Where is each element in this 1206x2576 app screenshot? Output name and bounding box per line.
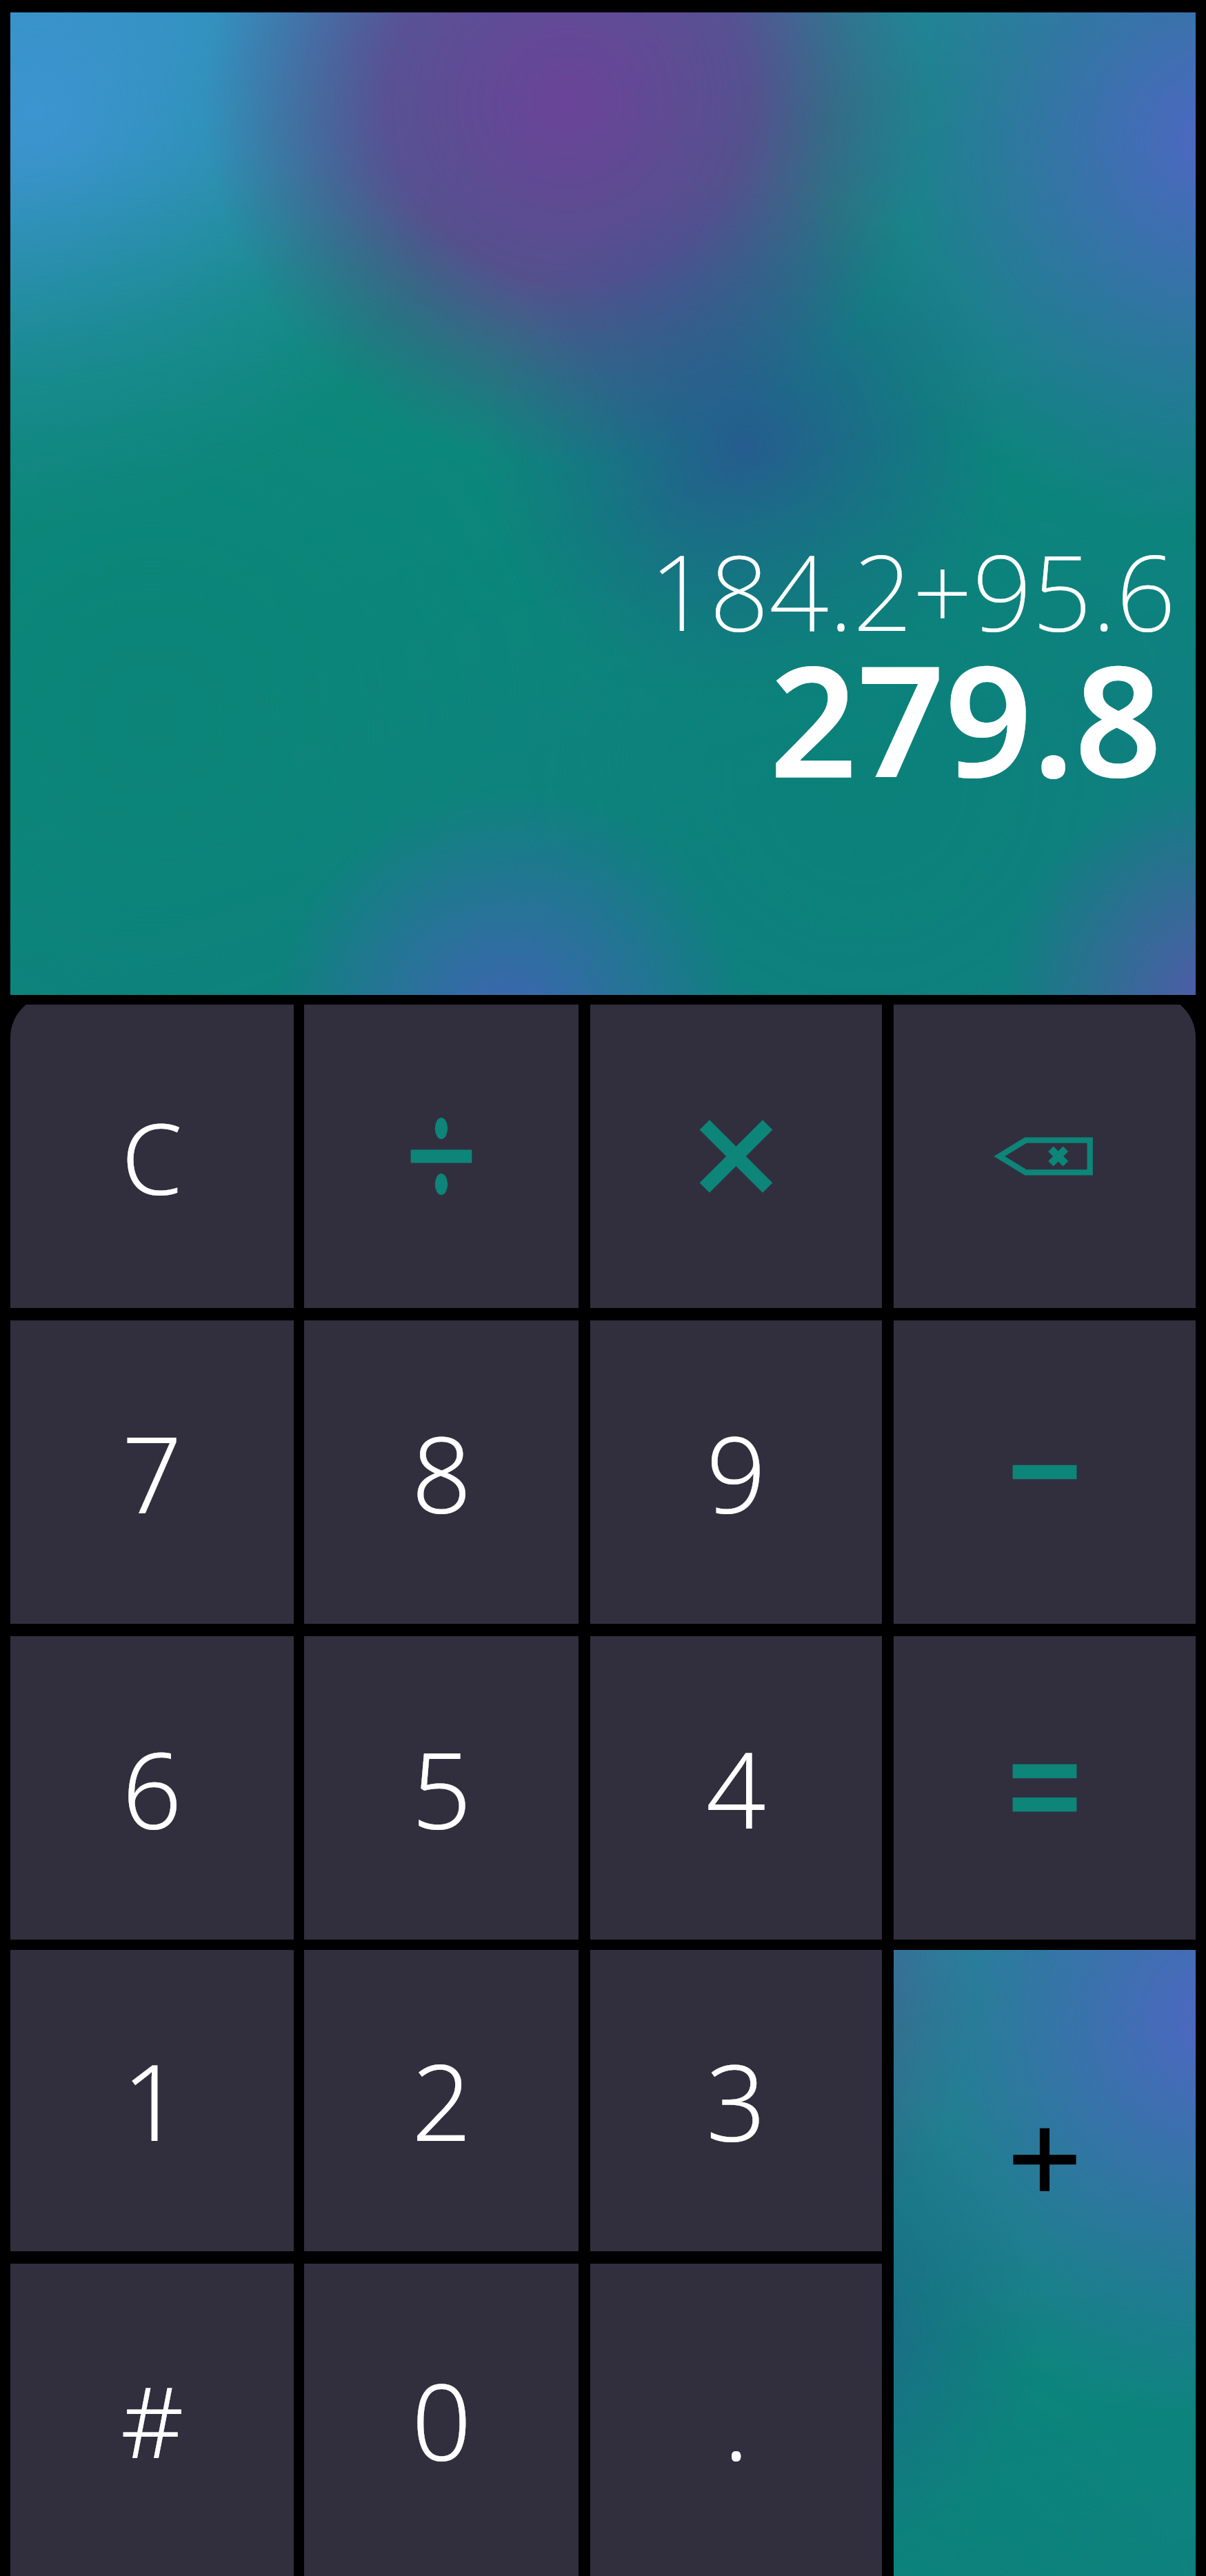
staticText: 2 (412, 2029, 472, 2172)
staticText: 5 (412, 1717, 472, 1860)
button[interactable]: 1 (10, 1950, 294, 2251)
button[interactable]: 8 (304, 1320, 579, 1624)
staticText: # (121, 2353, 184, 2486)
button[interactable]: Multiply (590, 1005, 882, 1308)
button[interactable]: . (590, 2264, 882, 2576)
staticText: . (723, 2348, 750, 2491)
staticText: 1 (122, 2029, 182, 2172)
button[interactable]: Plus (894, 1950, 1196, 2576)
staticText: 4 (706, 1717, 766, 1860)
button[interactable]: Divide (304, 1005, 579, 1308)
button[interactable]: Minus (894, 1320, 1196, 1624)
button[interactable]: 3 (590, 1950, 882, 2251)
button[interactable]: # (10, 2264, 294, 2576)
button[interactable]: 4 (590, 1636, 882, 1940)
button[interactable]: Equals (894, 1636, 1196, 1940)
button[interactable]: 7 (10, 1320, 294, 1624)
button[interactable]: 6 (10, 1636, 294, 1940)
button[interactable]: 5 (304, 1636, 579, 1940)
button[interactable]: C (10, 1005, 294, 1308)
staticText: 8 (412, 1401, 472, 1544)
staticText: 9 (706, 1401, 766, 1544)
staticText: 3 (706, 2029, 766, 2172)
staticText: 6 (122, 1717, 182, 1860)
staticText: C (121, 1090, 183, 1223)
staticText: 7 (122, 1401, 182, 1544)
staticText: 0 (412, 2348, 472, 2491)
button[interactable]: 9 (590, 1320, 882, 1624)
button[interactable]: 2 (304, 1950, 579, 2251)
button[interactable]: 0 (304, 2264, 579, 2576)
staticText: 279.8 (770, 614, 1163, 822)
staticText: 184.2+95.6 (650, 519, 1176, 662)
button[interactable]: Backspace (894, 1005, 1196, 1308)
